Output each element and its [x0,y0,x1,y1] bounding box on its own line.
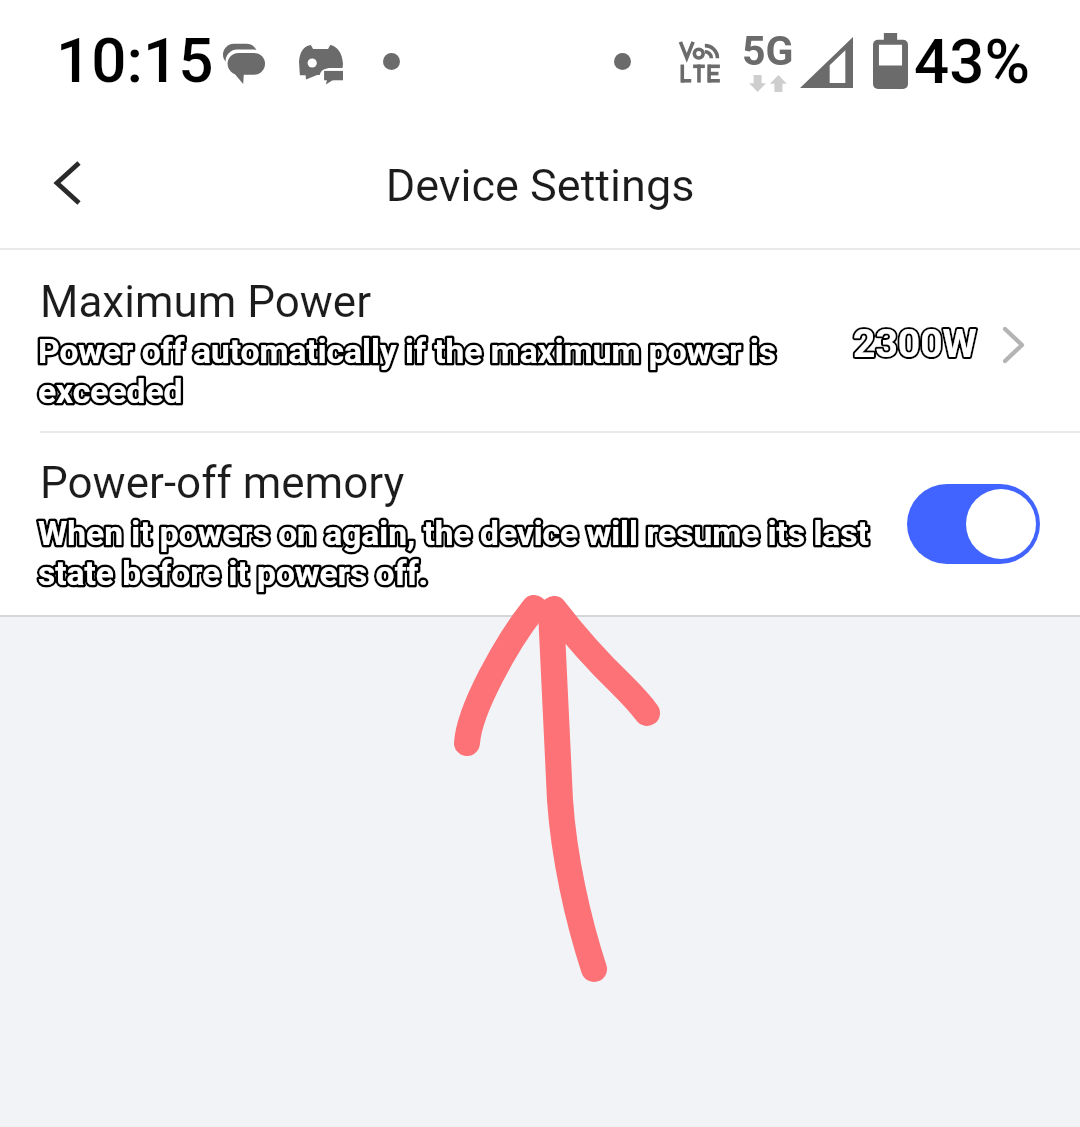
staticText: When it powers on again, the device will… [38,514,883,593]
staticText: Power-off memory [40,457,405,509]
staticText: Maximum Power [40,276,372,328]
button[interactable]: Back [24,128,112,238]
button[interactable]: Power-off memory [0,433,1080,615]
staticText: 10:15 [56,24,214,97]
staticText: Power off automatically if the maximum p… [38,332,798,411]
staticText: 2300W [853,321,977,367]
staticText: Power off automatically if the maximum p… [38,332,798,411]
staticText: 5G [742,27,794,75]
staticText: When it powers on again, the device will… [38,514,883,593]
button[interactable]: Power-off memory [907,484,1040,564]
staticText: Device Settings [0,159,1080,212]
button[interactable]: Maximum Power [0,250,1080,431]
staticText: 2300W [853,321,977,367]
staticText: 43% [914,25,1031,98]
